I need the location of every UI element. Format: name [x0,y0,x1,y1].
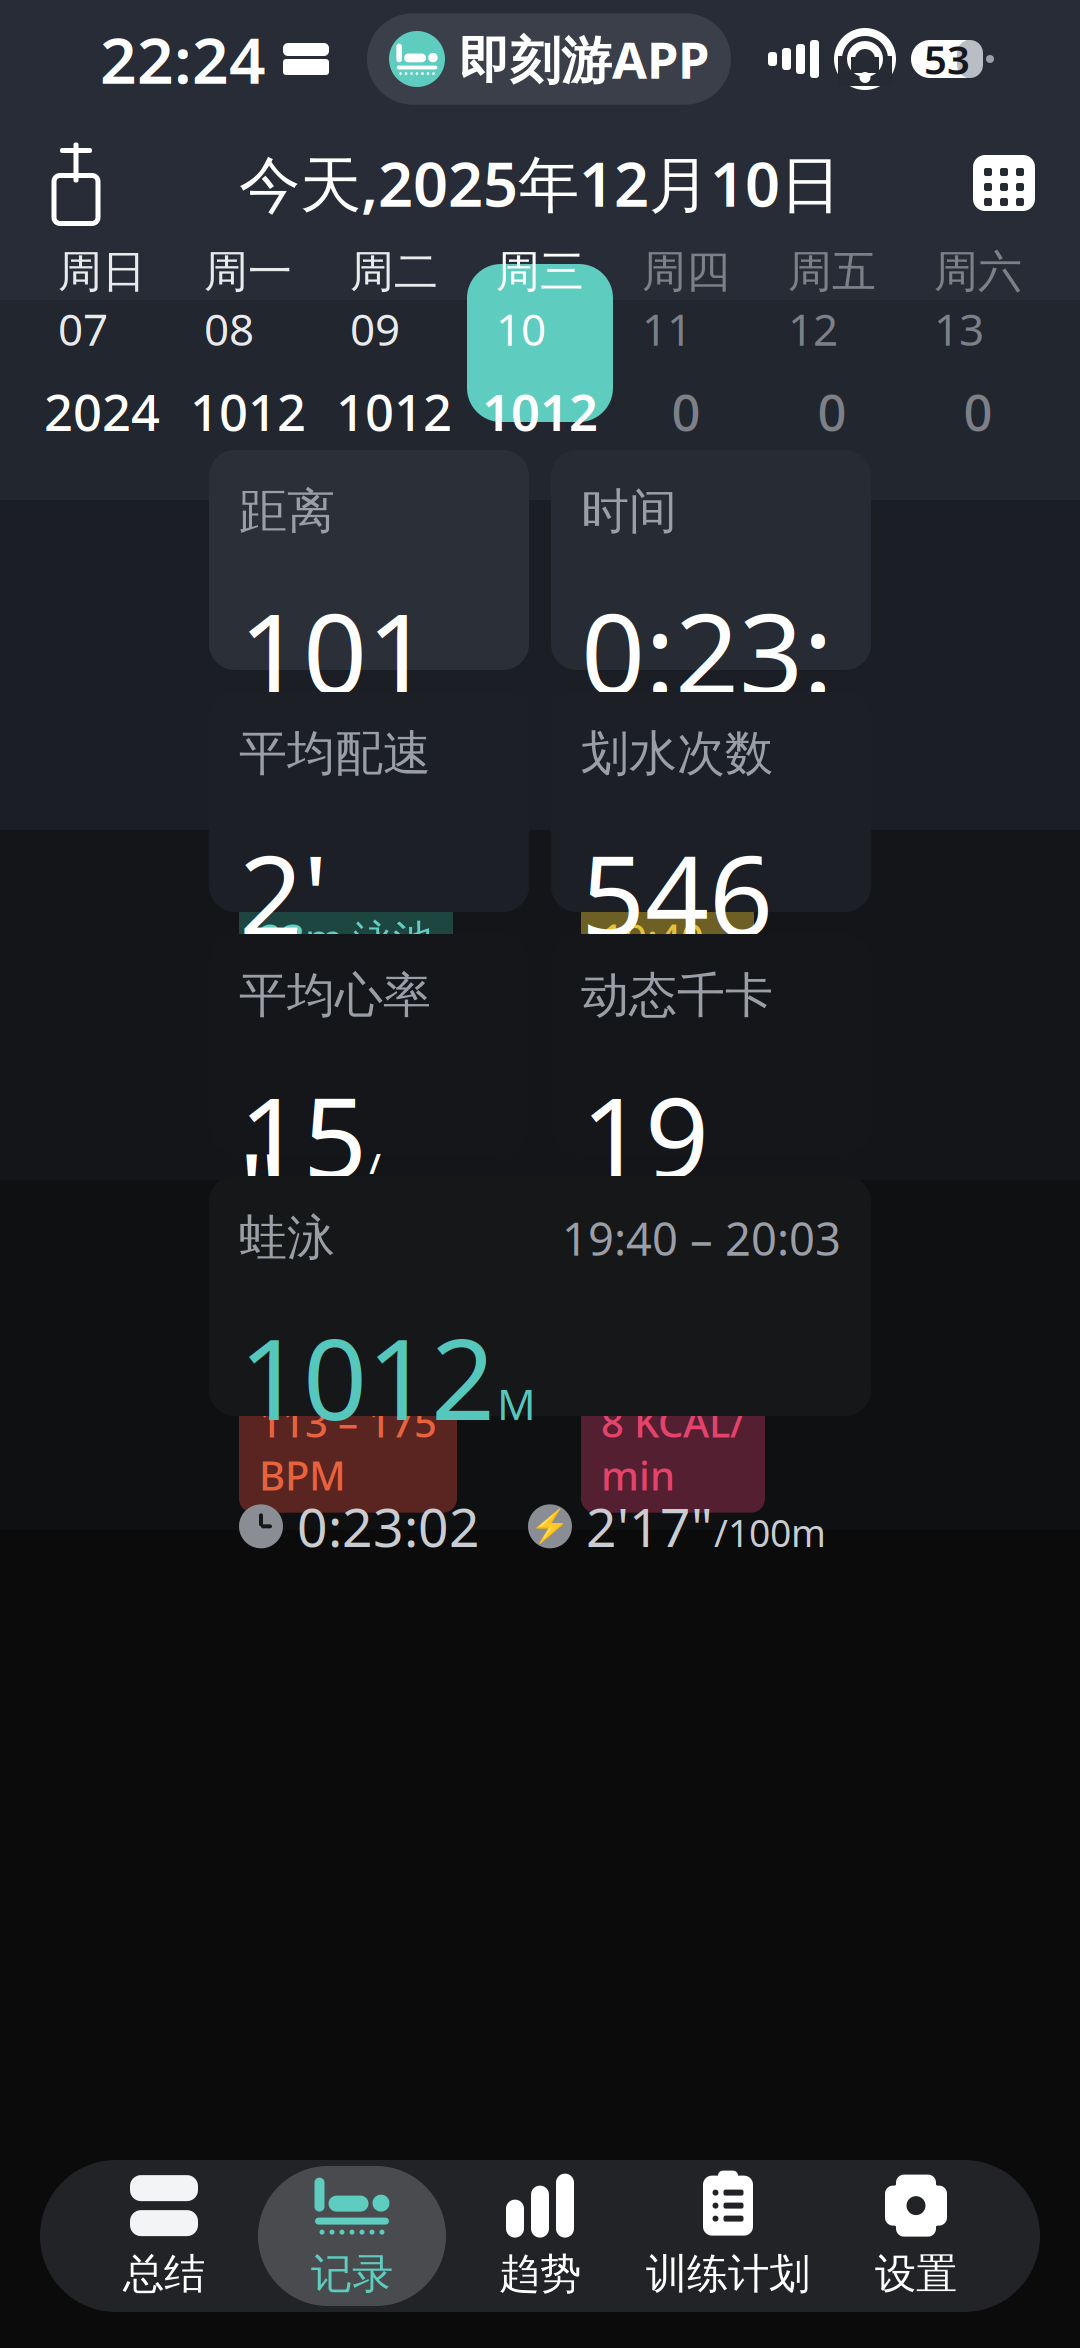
staticText: 周五 12 [788,241,876,358]
staticText: 周一 08 [204,241,292,358]
staticText: 1012 [239,1302,495,1451]
staticText: 0 [963,378,992,445]
staticText: /100m [714,1508,826,1557]
button[interactable]: 日历 [956,135,1052,231]
button[interactable]: 总结 [70,2166,258,2306]
staticText: 即刻游APP [459,25,709,93]
staticText: 2'17" [239,819,367,1265]
button[interactable]: 周四 11 [613,264,759,422]
staticText: 训练计划 [646,2249,810,2299]
staticText: 2'17" [586,1491,713,1562]
staticText: 平均心率 [239,966,431,1025]
staticText: 1012 [190,378,306,445]
staticText: 546 [581,819,773,968]
staticText: 113 – 175 BPM [259,1395,437,1502]
staticText: 23m 泳池 [259,911,433,965]
button[interactable]: 周日 07 [29,264,175,422]
staticText: /100m [369,1126,489,1247]
staticText: 动态千卡 [581,966,773,1025]
staticText: 154 [239,1061,367,1358]
staticText: 总结 [123,2249,205,2299]
staticText: 1012 [482,378,598,445]
staticText: 今天,2025年12月10日 [239,142,841,224]
button[interactable]: 蛙泳 [209,1176,871,1416]
staticText: 19:40 – 20:03 [562,1208,841,1268]
button[interactable]: 周一 08 [175,264,321,422]
staticText: 平均配速 [239,724,431,783]
staticText: ⚡ [530,1508,570,1545]
button[interactable]: 动态千卡 [551,934,871,1154]
staticText: 1012 [336,378,452,445]
staticText: 1012 [239,577,431,874]
staticText: 蛙泳 [239,1209,335,1268]
button[interactable]: 距离 [209,450,529,670]
button[interactable]: 周二 09 [321,264,467,422]
staticText: 19:40 – 20:03 [601,911,734,1018]
staticText: 191 [581,1061,709,1358]
staticText: 时间 [581,482,677,541]
button[interactable]: 周六 13 [905,264,1051,422]
button[interactable]: 周三 10 [467,264,613,422]
staticText: 距离 [239,482,335,541]
staticText: 周日 07 [58,241,146,358]
button[interactable]: 分享 [28,135,124,231]
button[interactable]: 平均配速 [209,692,529,912]
button[interactable]: 周五 12 [759,264,905,422]
staticText: 22:24 [100,16,266,101]
staticText: 周六 13 [934,241,1022,358]
staticText: M [497,1375,536,1432]
button[interactable]: 时间 [551,450,871,670]
staticText: 0:23:02 [581,577,833,874]
staticText: 8 KCAL/min [601,1395,745,1502]
staticText: 记录 [311,2249,393,2299]
staticText: 划水次数 [581,724,773,783]
staticText: 周四 11 [642,241,730,358]
staticText: 0:23:02 [297,1491,480,1562]
button[interactable]: 记录 [258,2166,446,2306]
staticText: 设置 [875,2249,957,2299]
staticText: 最快 1'54" /100m [259,1302,469,1408]
staticText: 周三 10 [496,241,584,358]
staticText: 周二 09 [350,241,438,358]
button[interactable]: 划水次数 [551,692,871,912]
staticText: 53 [924,32,970,85]
button[interactable]: 平均心率 [209,934,529,1154]
button[interactable]: 设置 [822,2166,1010,2306]
staticText: 趋势 [499,2249,581,2299]
staticText: 0 [817,378,846,445]
button[interactable]: 趋势 [446,2166,634,2306]
staticText: 2024 [44,378,160,445]
staticText: 54.0 /100m | 24 /min [601,1005,813,1111]
staticText: 0 [671,378,700,445]
button[interactable]: 训练计划 [634,2166,822,2306]
